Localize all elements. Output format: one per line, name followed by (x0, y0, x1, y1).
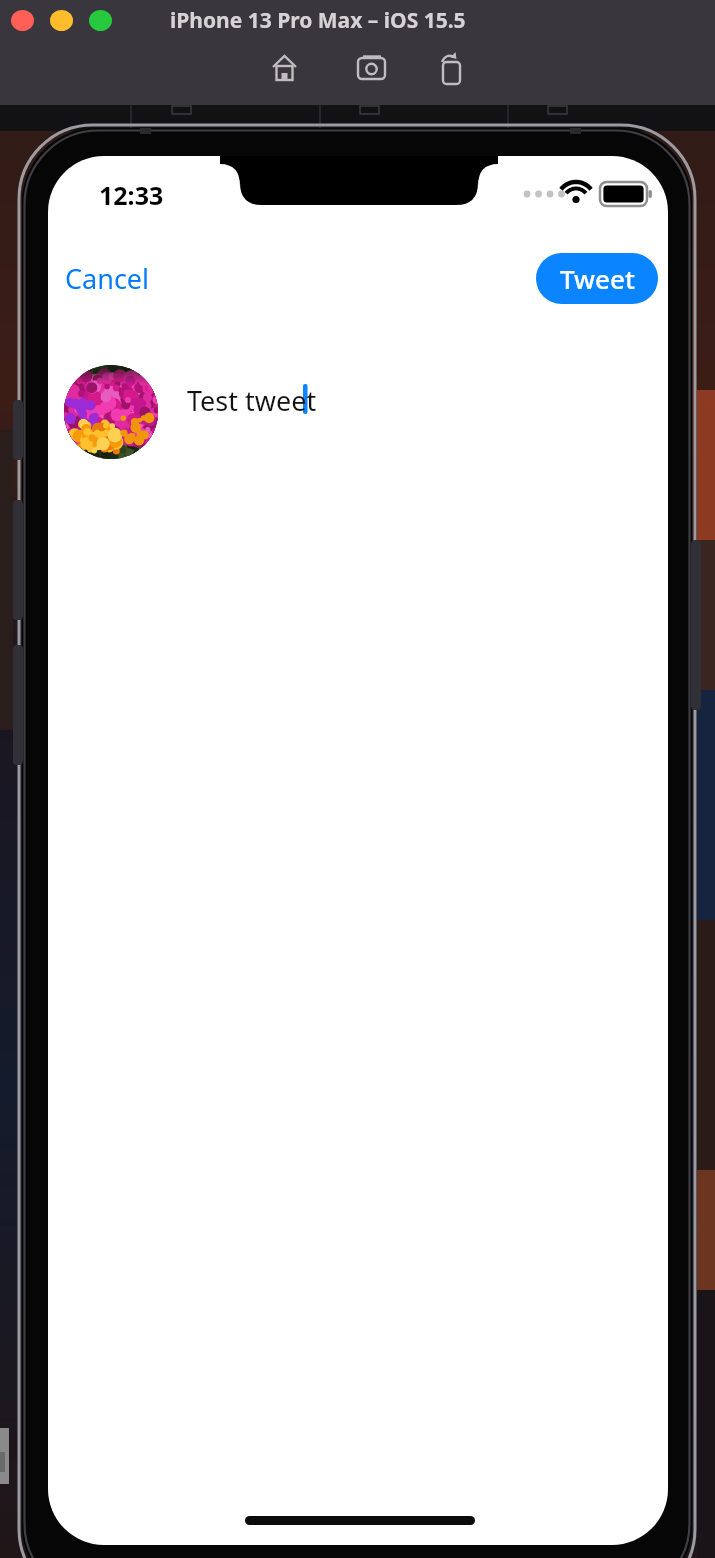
staticText: Tweet (560, 261, 635, 296)
staticText: iPhone 13 Pro Max – iOS 15.5 (170, 6, 466, 34)
button[interactable]: Profile photo (64, 365, 158, 459)
button[interactable]: Cancel (58, 254, 158, 303)
button[interactable]: Tweet (536, 253, 658, 304)
staticText: Cancel (65, 260, 150, 297)
staticText: Test tweet (187, 382, 317, 419)
staticText: 12:33 (99, 178, 164, 210)
button[interactable]: Test tweet (180, 378, 648, 422)
